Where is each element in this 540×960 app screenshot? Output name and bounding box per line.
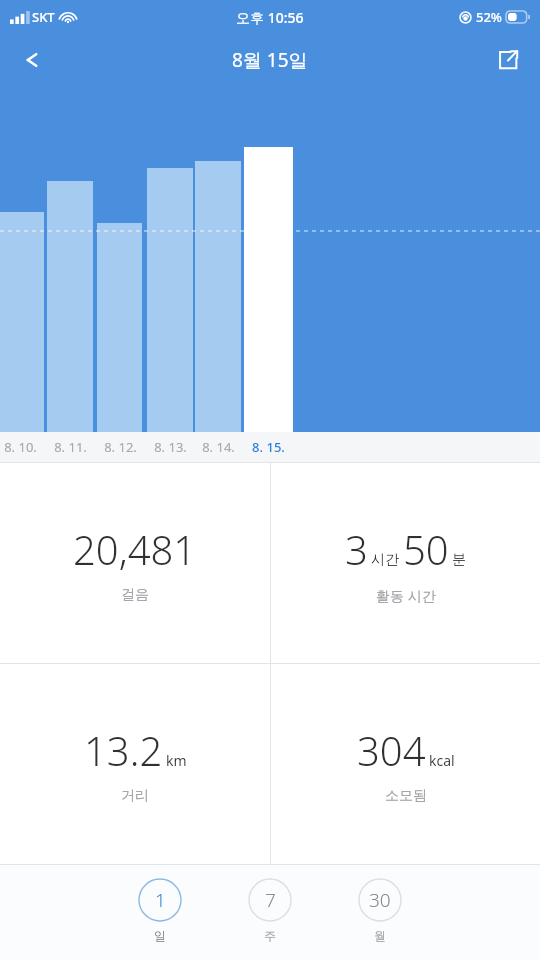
staticText: 8월 15일 [232, 47, 308, 73]
staticText: 8. 12. [104, 438, 137, 456]
staticText: 50 [403, 522, 449, 576]
button[interactable]: Share [484, 36, 532, 84]
staticText: 활동 시간 [376, 586, 436, 605]
button[interactable]: Back [8, 36, 56, 84]
staticText: km [166, 751, 187, 770]
staticText: 1 [155, 887, 166, 913]
staticText: kcal [429, 751, 455, 770]
staticText: 일 [154, 928, 166, 943]
staticText: 7 [265, 887, 276, 913]
staticText: 시간 [371, 551, 399, 569]
staticText: 8. 10. [4, 438, 37, 456]
staticText: 8. 11. [54, 438, 87, 456]
staticText: 13.2 [84, 723, 163, 777]
staticText: 거리 [121, 787, 149, 805]
staticText: 3 [345, 522, 368, 576]
staticText: 20,481 [73, 522, 197, 576]
staticText: 8. 13. [154, 438, 187, 456]
staticText: SKT [32, 8, 55, 26]
button[interactable]: 20,481 [0, 463, 270, 663]
button[interactable]: 7 [248, 878, 292, 943]
staticText: 8. 15. [252, 438, 285, 456]
staticText: 오후 10:56 [236, 8, 304, 27]
staticText: 52% [476, 8, 502, 26]
staticText: 걸음 [121, 586, 149, 604]
button[interactable]: 3 [271, 463, 540, 663]
button[interactable]: 13.2 [0, 664, 270, 864]
staticText: 월 [374, 928, 386, 943]
button[interactable]: 1 [138, 878, 182, 943]
staticText: 소모됨 [385, 787, 427, 805]
button[interactable]: 30 [358, 878, 402, 943]
staticText: 304 [357, 723, 426, 777]
staticText: 주 [264, 928, 276, 943]
staticText: 분 [452, 551, 466, 569]
button[interactable]: 304 [271, 664, 540, 864]
staticText: 8. 14. [202, 438, 235, 456]
staticText: 30 [369, 887, 391, 913]
